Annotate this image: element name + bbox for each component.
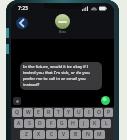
button[interactable]: Send: [101, 96, 110, 105]
staticText: 7:23: [18, 5, 28, 12]
button[interactable]: Z: [20, 130, 32, 139]
button[interactable]: Q: [12, 108, 22, 117]
staticText: Z: [25, 131, 28, 138]
staticText: H: [71, 120, 75, 127]
staticText: P: [107, 109, 111, 116]
staticText: A: [17, 120, 21, 127]
staticText: M: [97, 131, 102, 138]
button[interactable]: V: [58, 130, 69, 139]
button[interactable]: L: [101, 119, 111, 128]
button[interactable]: I: [84, 108, 93, 117]
button[interactable]: A: [14, 119, 23, 128]
button[interactable]: D: [35, 119, 45, 128]
button[interactable]: H: [68, 119, 78, 128]
button[interactable]: C: [46, 130, 57, 139]
staticText: D: [38, 120, 42, 127]
button[interactable]: P: [104, 108, 113, 117]
staticText: T: [57, 109, 60, 116]
staticText: S: [28, 120, 31, 127]
button[interactable]: X: [33, 130, 45, 139]
staticText: E: [37, 109, 40, 116]
staticText: K: [93, 120, 97, 127]
button[interactable]: M: [94, 130, 105, 139]
staticText: V: [62, 131, 66, 138]
button[interactable]: R: [44, 108, 53, 117]
staticText: G: [60, 120, 64, 127]
button[interactable]: Back: [15, 16, 29, 30]
staticText: R: [47, 109, 51, 116]
button[interactable]: W: [23, 108, 33, 117]
staticText: Q: [15, 109, 19, 116]
staticText: C: [50, 131, 54, 138]
staticText: B: [74, 131, 78, 138]
staticText: I: [88, 109, 90, 116]
button[interactable]: B: [70, 130, 81, 139]
button[interactable]: E: [34, 108, 43, 117]
staticText: N: [86, 131, 90, 138]
staticText: Boss: [59, 30, 66, 34]
staticText: F: [50, 120, 53, 127]
staticText: O: [97, 109, 101, 116]
button[interactable]: N: [82, 130, 93, 139]
button[interactable]: F: [46, 119, 56, 128]
staticText: X: [37, 131, 41, 138]
staticText: U: [77, 109, 81, 116]
staticText: L: [105, 120, 108, 127]
button[interactable]: O: [94, 108, 103, 117]
button[interactable]: Y: [64, 108, 73, 117]
button[interactable]: U: [74, 108, 83, 117]
button[interactable]: G: [57, 119, 67, 128]
button[interactable]: In the future, would it be okay if I tex…: [20, 62, 102, 90]
button[interactable]: J: [79, 119, 89, 128]
staticText: W: [26, 109, 31, 116]
staticText: Y: [67, 109, 70, 116]
staticText: J: [83, 120, 85, 127]
button[interactable]: S: [24, 119, 34, 128]
button[interactable]: T: [54, 108, 63, 117]
button[interactable]: Attach: [13, 97, 21, 105]
button[interactable]: K: [90, 119, 100, 128]
staticText: In the future, would it be okay if I tex…: [23, 64, 99, 88]
button[interactable]: Boss: [55, 14, 70, 34]
